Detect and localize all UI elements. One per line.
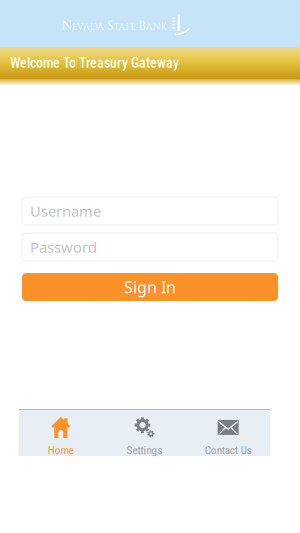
staticText: Welcome To Treasury Gateway	[10, 55, 179, 71]
button[interactable]: Contact Us	[186, 409, 270, 456]
staticText: BANK	[139, 18, 167, 34]
button[interactable]: Sign In	[22, 273, 278, 301]
staticText: NEVADA	[62, 18, 104, 34]
staticText: Settings	[126, 444, 162, 457]
staticText: Username	[30, 201, 101, 221]
staticText: Home	[48, 444, 74, 457]
staticText: STATE	[107, 18, 135, 34]
staticText: Contact Us	[205, 444, 252, 457]
staticText: Password	[30, 237, 97, 257]
staticText: Sign In	[124, 276, 176, 298]
button[interactable]: Home	[19, 409, 103, 456]
button[interactable]: Settings	[103, 409, 186, 456]
